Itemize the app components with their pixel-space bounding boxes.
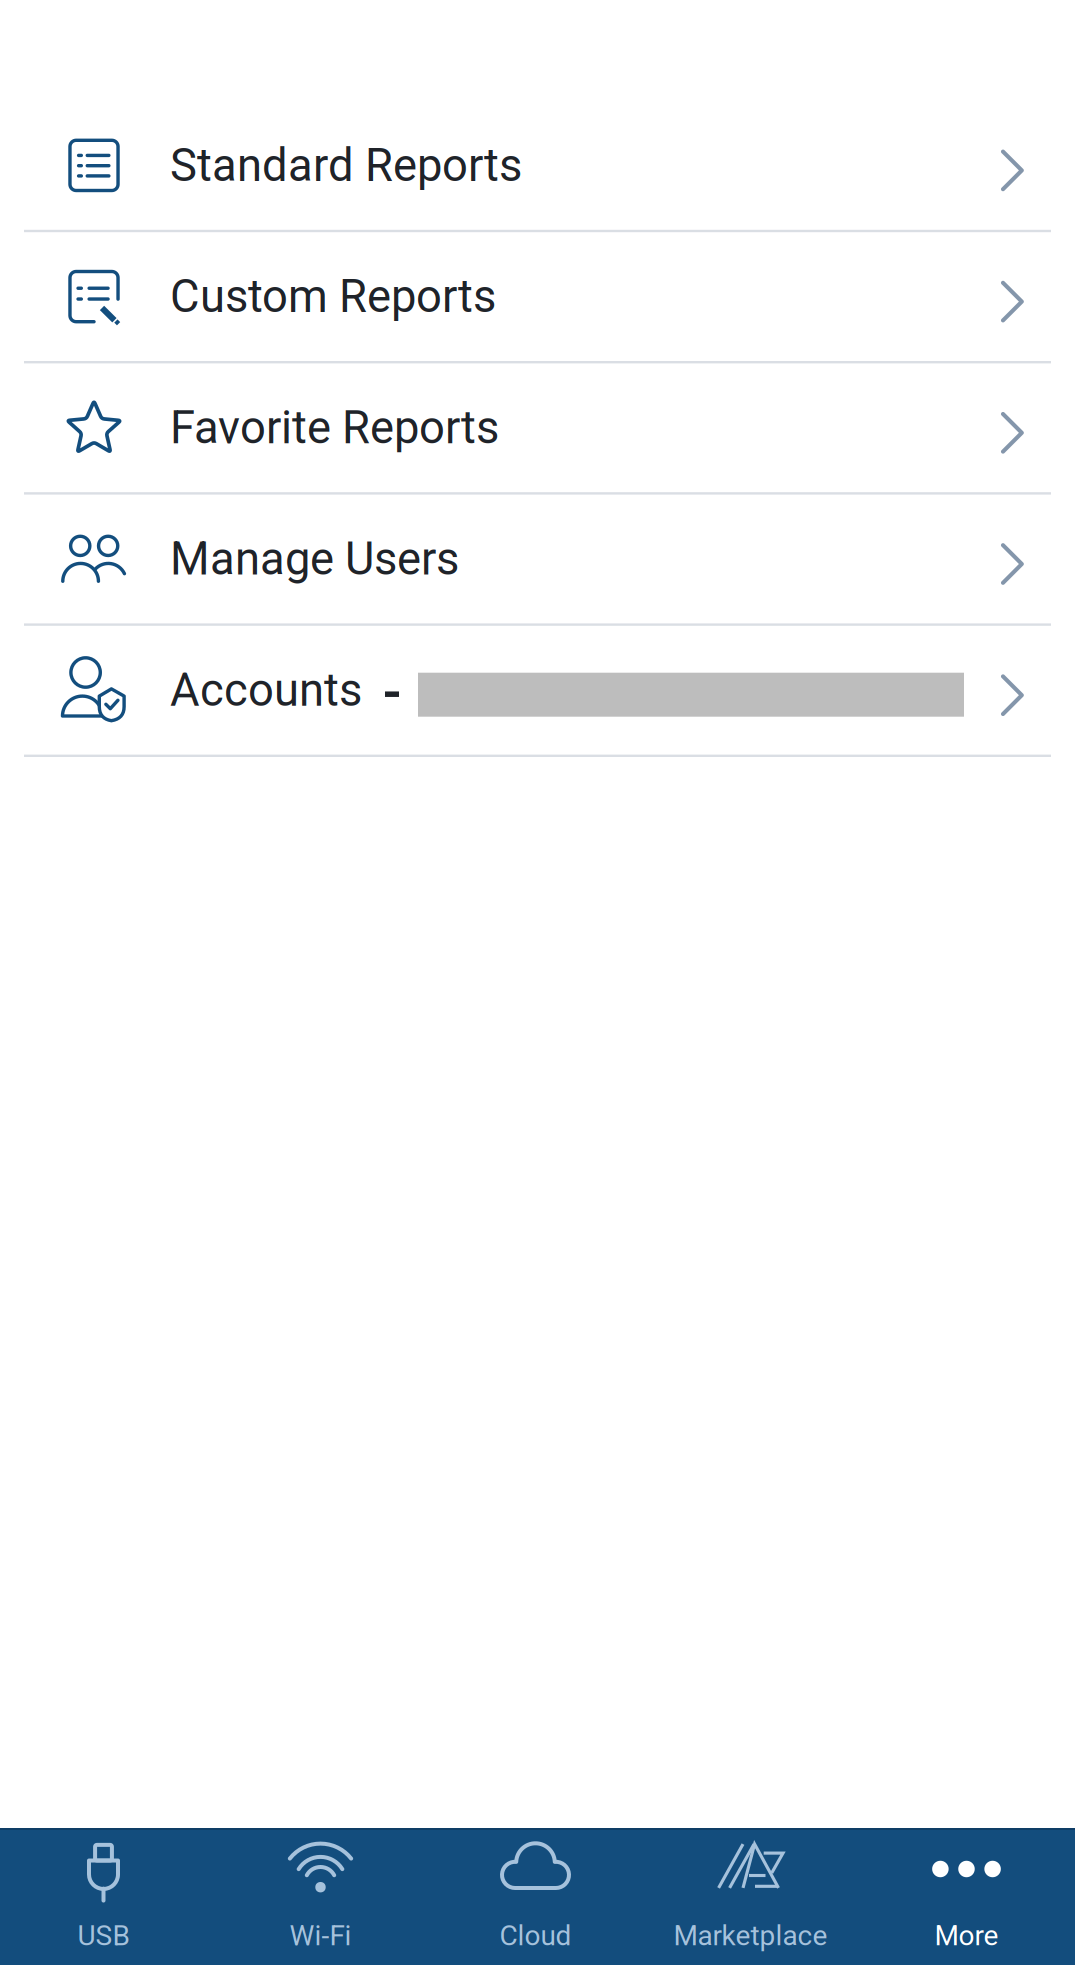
staticText: Accounts [170,664,362,717]
button[interactable]: Wi-Fi [215,1830,430,1965]
staticText: More [934,1919,998,1952]
staticText: Marketplace [673,1919,827,1952]
staticText: Manage Users [170,532,459,585]
staticText: Wi-Fi [289,1919,351,1952]
button[interactable]: More [860,1830,1075,1965]
button[interactable]: Custom Reports [0,232,1075,363]
staticText: Standard Reports [170,139,522,192]
button[interactable]: Manage Users [0,495,1075,626]
button[interactable]: Favorite Reports [0,363,1075,495]
button[interactable]: Accounts [0,626,1075,757]
staticText: Favorite Reports [170,401,499,454]
staticText: Cloud [499,1919,571,1952]
button[interactable]: Standard Reports [0,101,1075,232]
button[interactable]: Marketplace [645,1830,860,1965]
staticText: USB [77,1919,129,1952]
staticText: Custom Reports [170,270,496,323]
button[interactable]: USB [0,1830,215,1965]
button[interactable]: Cloud [430,1830,645,1965]
